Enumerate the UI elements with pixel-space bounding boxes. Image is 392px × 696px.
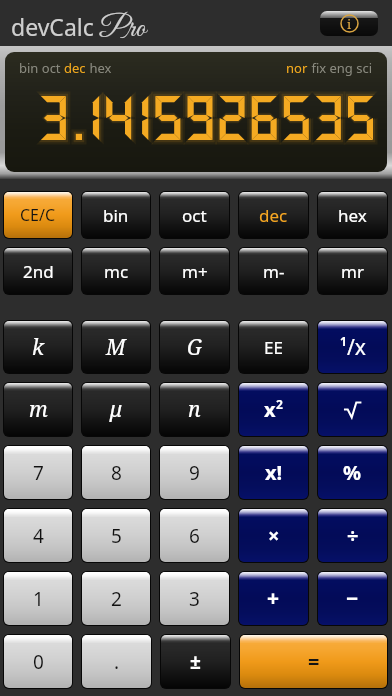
staticText: 2 [111, 586, 122, 612]
staticText: mr [341, 260, 364, 283]
staticText: 1 [33, 586, 44, 612]
button[interactable]: = [240, 635, 387, 688]
staticText: n [188, 395, 201, 424]
button[interactable]: EE [239, 321, 308, 373]
staticText: − [346, 584, 359, 613]
button[interactable]: 1 [318, 321, 387, 373]
staticText: 2 [276, 396, 283, 412]
button[interactable]: . [82, 635, 151, 688]
staticText: 2nd [23, 260, 54, 283]
button[interactable]: x [239, 383, 308, 436]
button[interactable]: mr [318, 248, 387, 294]
button[interactable]: Info [320, 11, 378, 36]
button[interactable]: + [239, 572, 308, 625]
staticText: 1 [340, 333, 347, 349]
button[interactable]: 4 [4, 509, 72, 562]
staticText: mc [104, 260, 129, 283]
button[interactable]: 0 [4, 635, 72, 688]
staticText: k [32, 333, 44, 362]
staticText: 5 [111, 523, 122, 549]
button[interactable]: k [4, 321, 72, 373]
staticText: Pro [100, 10, 146, 48]
staticText: + [267, 584, 280, 613]
button[interactable]: x! [239, 446, 308, 499]
staticText: i [347, 15, 352, 33]
staticText: × [268, 522, 280, 549]
staticText: devCalc [11, 11, 94, 42]
button[interactable]: 3 [160, 572, 229, 625]
button[interactable]: bin [82, 192, 150, 238]
staticText: dec [64, 59, 86, 77]
staticText: 8 [111, 460, 122, 486]
staticText: m- [263, 260, 285, 283]
button[interactable]: n [160, 383, 229, 436]
staticText: oct [182, 204, 207, 227]
button[interactable]: M [82, 321, 150, 373]
button[interactable]: 5 [82, 509, 150, 562]
button[interactable]: m- [239, 248, 308, 294]
staticText: m [29, 395, 48, 424]
button[interactable]: 9 [160, 446, 229, 499]
staticText: 6 [189, 523, 200, 549]
staticText: ÷ [347, 522, 359, 549]
button[interactable]: ± [161, 635, 230, 688]
button[interactable]: μ [82, 383, 150, 436]
button[interactable]: m+ [160, 248, 229, 294]
staticText: /x [347, 333, 366, 362]
button[interactable]: × [239, 509, 308, 562]
staticText: fix eng sci [308, 59, 373, 77]
staticText: CE/C [20, 204, 56, 226]
button[interactable]: 6 [160, 509, 229, 562]
button[interactable]: G [160, 321, 229, 373]
staticText: 3 [189, 586, 200, 612]
button[interactable]: ÷ [318, 509, 387, 562]
button[interactable]: m [4, 383, 72, 436]
staticText: bin [103, 204, 129, 227]
button[interactable]: mc [82, 248, 150, 294]
button[interactable]: hex [318, 192, 387, 238]
staticText: 9 [189, 460, 200, 486]
staticText: m+ [182, 260, 208, 283]
staticText: % [343, 459, 362, 486]
staticText: = [308, 648, 320, 675]
staticText: μ [110, 395, 123, 424]
button[interactable]: oct [160, 192, 229, 238]
staticText: x! [265, 459, 283, 486]
button[interactable]: 2nd [4, 248, 72, 294]
button[interactable] [318, 383, 387, 436]
staticText: hex [86, 59, 112, 77]
button[interactable]: 2 [82, 572, 150, 625]
staticText: bin oct [19, 59, 64, 77]
button[interactable]: − [318, 572, 387, 625]
staticText: G [187, 333, 202, 362]
staticText: nor [286, 59, 308, 77]
staticText: 4 [33, 523, 44, 549]
staticText: 7 [33, 460, 44, 486]
button[interactable]: dec [239, 192, 308, 238]
staticText: M [106, 333, 126, 362]
staticText: dec [259, 204, 288, 227]
staticText: x [264, 396, 276, 423]
staticText: ± [190, 649, 201, 675]
button[interactable]: 1 [4, 572, 72, 625]
button[interactable]: CE/C [4, 192, 72, 238]
button[interactable]: % [318, 446, 387, 499]
staticText: . [114, 649, 120, 675]
button[interactable]: 7 [4, 446, 72, 499]
button[interactable]: 8 [82, 446, 150, 499]
staticText: EE [264, 336, 283, 359]
staticText: 0 [33, 649, 44, 675]
staticText: hex [338, 204, 367, 227]
